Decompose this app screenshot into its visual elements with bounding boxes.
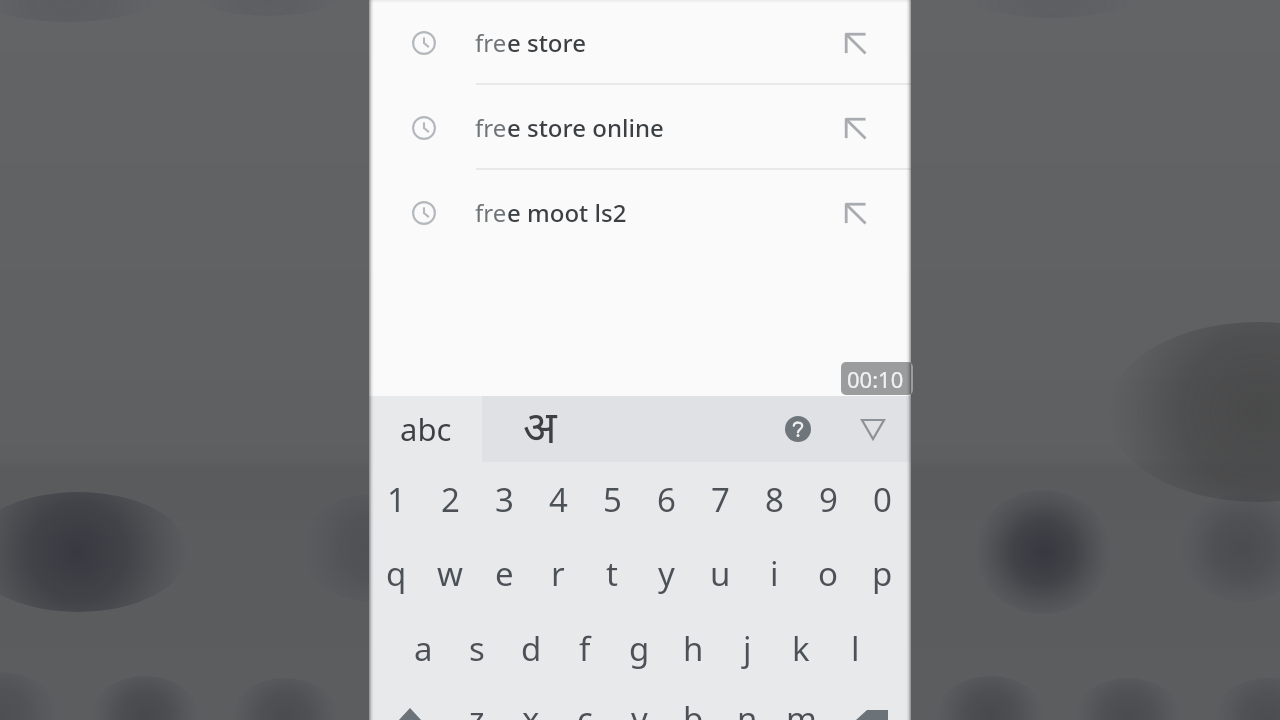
button[interactable]: 3 bbox=[477, 462, 531, 536]
staticText: e store online bbox=[507, 111, 664, 144]
button[interactable]: a bbox=[396, 610, 450, 686]
button[interactable]: k bbox=[774, 610, 828, 686]
button[interactable]: abc bbox=[369, 396, 482, 462]
staticText: 2 bbox=[441, 477, 460, 522]
button[interactable]: 1 bbox=[369, 462, 423, 536]
button[interactable]: 6 bbox=[639, 462, 693, 536]
staticText: e store bbox=[507, 26, 586, 59]
button[interactable]: o bbox=[801, 536, 855, 610]
staticText: e moot ls2 bbox=[507, 196, 627, 229]
staticText: q bbox=[386, 551, 407, 596]
staticText: n bbox=[737, 696, 758, 720]
button[interactable]: 2 bbox=[423, 462, 477, 536]
staticText: f bbox=[579, 626, 591, 671]
button[interactable]: Backspace bbox=[828, 696, 911, 720]
staticText: w bbox=[437, 551, 463, 596]
button[interactable]: i bbox=[747, 536, 801, 610]
staticText: k bbox=[792, 626, 810, 671]
button[interactable]: अ bbox=[482, 396, 911, 462]
button[interactable]: 4 bbox=[531, 462, 585, 536]
staticText: 9 bbox=[819, 477, 838, 522]
staticText: अ bbox=[523, 396, 557, 456]
staticText: 3 bbox=[495, 477, 514, 522]
button[interactable]: fre bbox=[369, 170, 911, 255]
button[interactable]: t bbox=[585, 536, 639, 610]
button[interactable]: fre bbox=[369, 85, 911, 170]
staticText: s bbox=[469, 626, 485, 671]
button[interactable]: Shift bbox=[369, 696, 450, 720]
staticText: v bbox=[631, 696, 648, 720]
staticText: l bbox=[851, 626, 860, 671]
button[interactable]: fre bbox=[369, 0, 911, 85]
staticText: z bbox=[469, 696, 485, 720]
staticText: e bbox=[495, 551, 514, 596]
staticText: d bbox=[521, 626, 542, 671]
staticText: t bbox=[606, 551, 618, 596]
staticText: r bbox=[551, 551, 565, 596]
staticText: 6 bbox=[657, 477, 676, 522]
staticText: o bbox=[818, 551, 838, 596]
button[interactable]: 9 bbox=[801, 462, 855, 536]
button[interactable]: v bbox=[612, 696, 666, 720]
button[interactable]: c bbox=[558, 696, 612, 720]
staticText: 5 bbox=[603, 477, 622, 522]
staticText: j bbox=[743, 626, 752, 671]
button[interactable]: g bbox=[612, 610, 666, 686]
staticText: c bbox=[577, 696, 593, 720]
staticText: p bbox=[872, 551, 893, 596]
staticText: m bbox=[786, 696, 817, 720]
button[interactable]: d bbox=[504, 610, 558, 686]
button[interactable]: u bbox=[693, 536, 747, 610]
staticText: a bbox=[414, 626, 433, 671]
staticText: fre bbox=[475, 111, 507, 144]
staticText: 0 bbox=[873, 477, 892, 522]
button[interactable]: y bbox=[639, 536, 693, 610]
staticText: 1 bbox=[387, 477, 406, 522]
button[interactable]: Hide keyboard bbox=[851, 407, 895, 451]
button[interactable]: h bbox=[666, 610, 720, 686]
button[interactable]: 5 bbox=[585, 462, 639, 536]
button[interactable]: e bbox=[477, 536, 531, 610]
button[interactable]: b bbox=[666, 696, 720, 720]
button[interactable]: w bbox=[423, 536, 477, 610]
button[interactable]: z bbox=[450, 696, 504, 720]
button[interactable]: 8 bbox=[747, 462, 801, 536]
staticText: u bbox=[710, 551, 731, 596]
staticText: fre bbox=[475, 196, 507, 229]
button[interactable]: n bbox=[720, 696, 774, 720]
button[interactable]: x bbox=[504, 696, 558, 720]
staticText: 7 bbox=[711, 477, 730, 522]
button[interactable]: j bbox=[720, 610, 774, 686]
staticText: b bbox=[683, 696, 704, 720]
staticText: 4 bbox=[549, 477, 568, 522]
button[interactable]: 7 bbox=[693, 462, 747, 536]
button[interactable]: l bbox=[828, 610, 882, 686]
staticText: y bbox=[658, 551, 675, 596]
button[interactable]: r bbox=[531, 536, 585, 610]
button[interactable]: 0 bbox=[855, 462, 909, 536]
button[interactable]: s bbox=[450, 610, 504, 686]
staticText: fre bbox=[475, 26, 507, 59]
button[interactable]: f bbox=[558, 610, 612, 686]
staticText: 8 bbox=[765, 477, 784, 522]
staticText: g bbox=[629, 626, 650, 671]
button[interactable]: q bbox=[369, 536, 423, 610]
button[interactable]: p bbox=[855, 536, 909, 610]
button[interactable]: m bbox=[774, 696, 828, 720]
staticText: i bbox=[770, 551, 779, 596]
staticText: x bbox=[522, 696, 540, 720]
staticText: 00:10 bbox=[847, 364, 904, 394]
staticText: h bbox=[683, 626, 704, 671]
staticText: abc bbox=[400, 408, 452, 450]
button[interactable]: Help bbox=[776, 407, 820, 451]
